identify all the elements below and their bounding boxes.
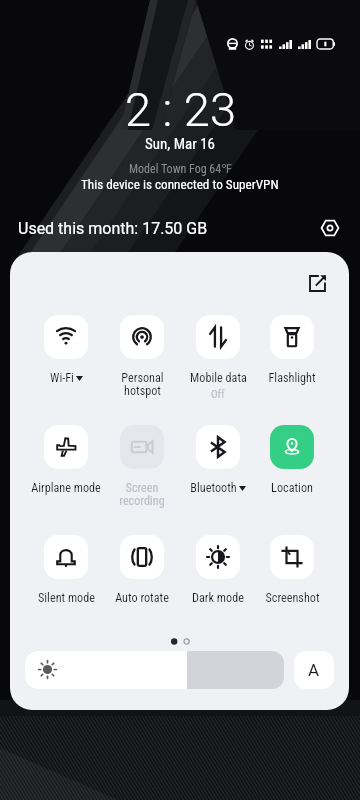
staticText: Screenshot (265, 591, 320, 605)
button[interactable]: Silent mode (24, 535, 108, 605)
staticText: Airplane mode (31, 481, 101, 495)
button[interactable]: A (294, 651, 334, 689)
button[interactable]: Personal hotspot (100, 315, 184, 398)
button[interactable]: Flashlight (250, 315, 334, 385)
button[interactable]: Bluetooth (176, 425, 260, 495)
button[interactable]: Edit quick settings (303, 269, 331, 297)
staticText: Location (271, 481, 313, 495)
staticText: Model Town Fog 64℉ (129, 160, 232, 176)
button[interactable]: Wi-Fi (24, 315, 108, 385)
staticText: Screen recording (119, 481, 165, 508)
staticText: Wi-Fi (50, 371, 74, 385)
staticText: Used this month: 17.50 GB (18, 219, 208, 238)
button[interactable]: Screen recording (100, 425, 184, 508)
button[interactable]: Brightness (25, 651, 284, 689)
button[interactable]: Location (250, 425, 334, 495)
button[interactable]: Dark mode (176, 535, 260, 605)
button[interactable]: Screenshot (250, 535, 334, 605)
staticText: Mobile data (190, 371, 247, 385)
staticText: Flashlight (268, 371, 316, 385)
staticText: Auto rotate (115, 591, 169, 605)
staticText: Personal hotspot (121, 371, 164, 398)
staticText: Bluetooth (190, 481, 237, 495)
staticText: 2 : 23 (125, 82, 236, 137)
staticText: Silent mode (38, 591, 95, 605)
staticText: Dark mode (192, 591, 244, 605)
staticText: Sun, Mar 16 (145, 135, 216, 153)
staticText: Off (211, 388, 225, 401)
button[interactable]: Mobile data (176, 315, 260, 401)
button[interactable]: Settings (315, 213, 345, 243)
button[interactable]: Airplane mode (24, 425, 108, 495)
staticText: This device is connected to SuperVPN (81, 177, 279, 192)
staticText: A (308, 660, 320, 680)
button[interactable]: Auto rotate (100, 535, 184, 605)
